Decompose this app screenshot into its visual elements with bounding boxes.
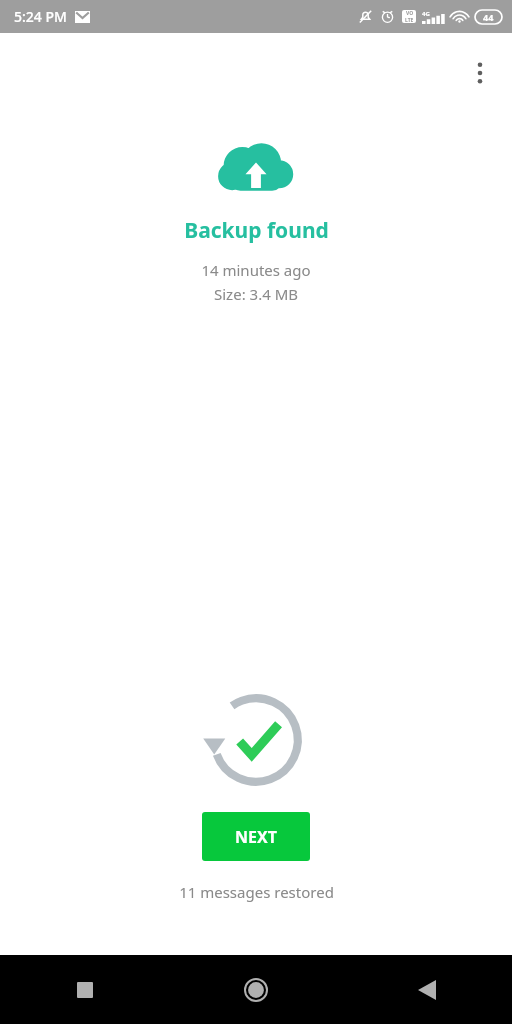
button[interactable]: Recents xyxy=(0,955,170,1024)
staticText: LTE xyxy=(405,17,414,23)
staticText: NEXT xyxy=(235,826,277,848)
staticText: VO xyxy=(406,10,414,17)
staticText: 14 minutes ago xyxy=(201,260,311,280)
button[interactable]: NEXT xyxy=(202,812,310,861)
staticText: 5:24 PM xyxy=(14,7,67,26)
staticText: 4G xyxy=(422,10,430,18)
staticText: 11 messages restored xyxy=(179,882,334,902)
button[interactable]: Back xyxy=(341,955,512,1024)
staticText: Backup found xyxy=(184,216,329,245)
staticText: Size: 3.4 MB xyxy=(214,284,298,304)
button[interactable]: More options xyxy=(456,49,504,97)
button[interactable]: Home xyxy=(170,955,341,1024)
staticText: 44 xyxy=(483,11,494,23)
